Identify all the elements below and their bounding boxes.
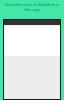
staticText: Detailed view is disabled in this app — [5, 2, 59, 12]
